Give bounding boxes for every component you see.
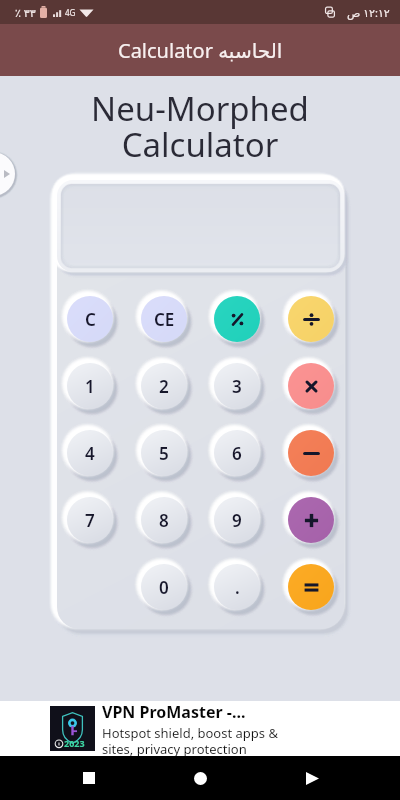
staticText: 4 <box>85 442 95 465</box>
button[interactable]: 1 <box>67 363 113 409</box>
staticText: 2 <box>159 375 169 398</box>
staticText: C <box>85 308 96 331</box>
staticText: Hotspot shield, boost apps & sites, priv… <box>102 724 278 756</box>
staticText: 9 <box>232 509 242 532</box>
button[interactable]: 3 <box>214 363 260 409</box>
button[interactable]: 0 <box>141 564 187 610</box>
button[interactable]: 7 <box>67 497 113 543</box>
button[interactable]: Open side menu <box>0 152 15 196</box>
staticText: 0 <box>159 576 169 599</box>
button[interactable]: 5 <box>141 430 187 476</box>
button[interactable]: CE <box>141 296 187 342</box>
staticText: Calculator الحاسبه <box>118 37 283 64</box>
staticText: 7 <box>85 509 95 532</box>
button[interactable]: C <box>67 296 113 342</box>
staticText: Neu-Morphed Calculator <box>0 86 400 167</box>
button[interactable]: . <box>214 564 260 610</box>
staticText: 8 <box>159 509 169 532</box>
staticText: VPN ProMaster -... <box>102 701 246 723</box>
button[interactable]: Equals <box>288 564 334 610</box>
staticText: 3 <box>232 375 242 398</box>
button[interactable]: Add <box>288 497 334 543</box>
staticText: 4G <box>65 7 76 18</box>
button[interactable]: 9 <box>214 497 260 543</box>
staticText: CE <box>154 308 175 331</box>
button[interactable]: Home <box>177 756 223 800</box>
staticText: ١٢:١٢ ص <box>347 5 390 20</box>
button[interactable]: Divide <box>288 296 334 342</box>
staticText: 2023 <box>64 737 85 749</box>
button[interactable]: 2 <box>141 363 187 409</box>
button[interactable]: 4 <box>67 430 113 476</box>
button[interactable]: Percent <box>214 296 260 342</box>
button[interactable]: Recent apps <box>66 756 112 800</box>
staticText: ٪ ٣٣ <box>15 5 36 20</box>
button[interactable]: Subtract <box>288 430 334 476</box>
button[interactable]: Back <box>289 756 335 800</box>
staticText: 6 <box>232 442 242 465</box>
staticText: 1 <box>85 375 95 398</box>
staticText: 5 <box>159 442 169 465</box>
staticText: . <box>235 576 240 599</box>
button[interactable]: Multiply <box>288 363 334 409</box>
button[interactable]: 8 <box>141 497 187 543</box>
button[interactable]: 6 <box>214 430 260 476</box>
